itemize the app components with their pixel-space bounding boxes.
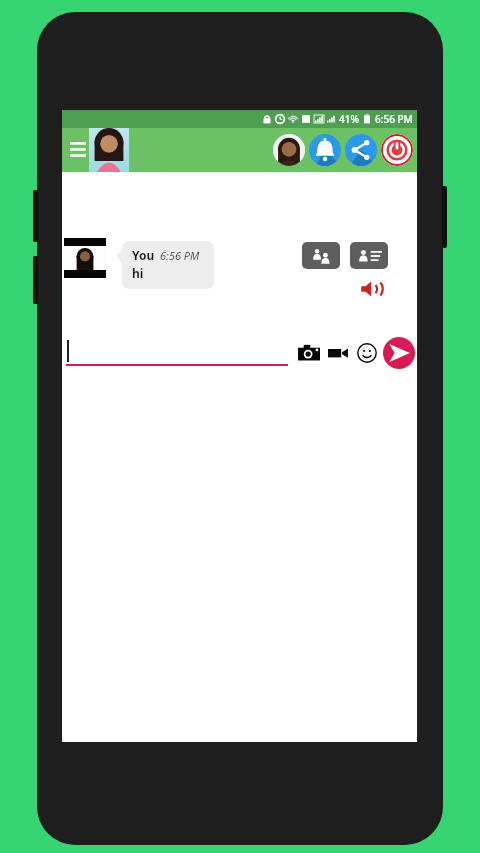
button[interactable]: Power xyxy=(381,134,413,166)
button[interactable]: Contact details xyxy=(350,242,388,269)
staticText: 6:56 PM xyxy=(375,112,413,126)
staticText: hi xyxy=(132,265,144,281)
button[interactable]: Notifications xyxy=(309,134,341,166)
button[interactable]: Send xyxy=(383,337,415,369)
button[interactable]: Emoji xyxy=(354,340,380,366)
button[interactable]: Sound xyxy=(356,277,384,301)
button[interactable]: Camera xyxy=(296,340,322,366)
staticText: 41% xyxy=(339,112,359,126)
staticText: 6:56 PM xyxy=(160,248,200,263)
button[interactable]: Profile photo xyxy=(89,128,129,172)
button[interactable]: Account xyxy=(273,134,305,166)
button[interactable]: Group members xyxy=(302,242,340,269)
staticText: You xyxy=(132,247,155,263)
button[interactable]: Sender photo xyxy=(64,238,106,278)
button[interactable]: You xyxy=(122,241,214,289)
button[interactable]: Message input xyxy=(66,336,288,366)
button[interactable]: Video xyxy=(325,340,351,366)
button[interactable]: Menu xyxy=(67,139,89,161)
button[interactable]: Share xyxy=(345,134,377,166)
